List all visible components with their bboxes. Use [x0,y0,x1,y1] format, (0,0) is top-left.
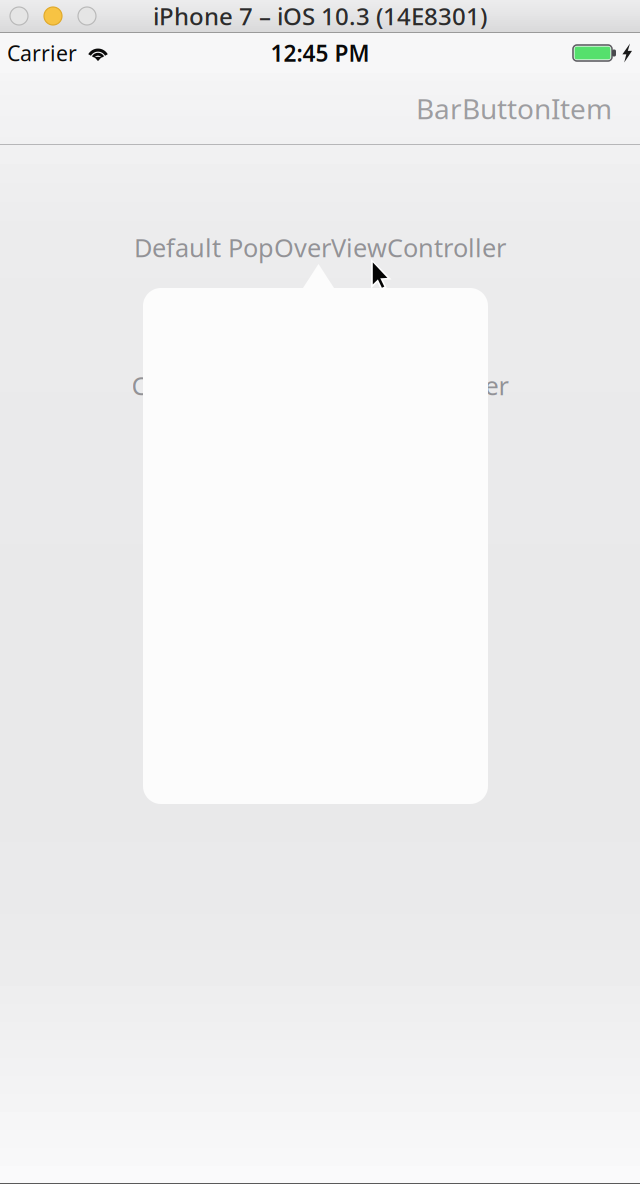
button[interactable]: BarButtonItem [406,78,622,139]
button[interactable]: Default PopOverViewController [0,228,640,267]
staticText: 12:45 PM [270,38,369,68]
button[interactable]: Close window [10,7,28,25]
button[interactable]: Minimize window [44,7,62,25]
button[interactable]: Custom PopOverViewController [0,366,640,405]
button[interactable]: Zoom window [78,7,96,25]
staticText: Default PopOverViewController [134,231,506,264]
staticText: Custom PopOverViewController [131,369,508,402]
staticText: Carrier [7,39,77,67]
staticText: BarButtonItem [416,90,612,127]
staticText: iPhone 7 – iOS 10.3 (14E8301) [153,0,487,32]
